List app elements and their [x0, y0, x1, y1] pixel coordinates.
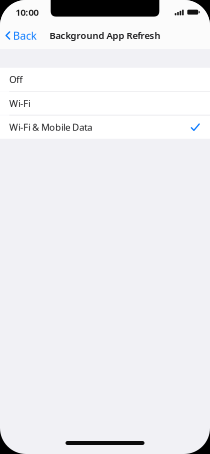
staticText: Wi-Fi — [9, 97, 30, 109]
button[interactable]: Back — [0, 24, 43, 46]
staticText: Off — [9, 73, 22, 86]
staticText: 10:00 — [15, 6, 38, 18]
button[interactable]: Wi-Fi & Mobile Data — [0, 116, 210, 139]
staticText: Background App Refresh — [49, 29, 160, 42]
button[interactable]: Off — [0, 68, 210, 91]
button[interactable]: Wi-Fi — [0, 92, 210, 115]
staticText: Back — [13, 28, 37, 43]
staticText: Wi-Fi & Mobile Data — [9, 121, 92, 133]
